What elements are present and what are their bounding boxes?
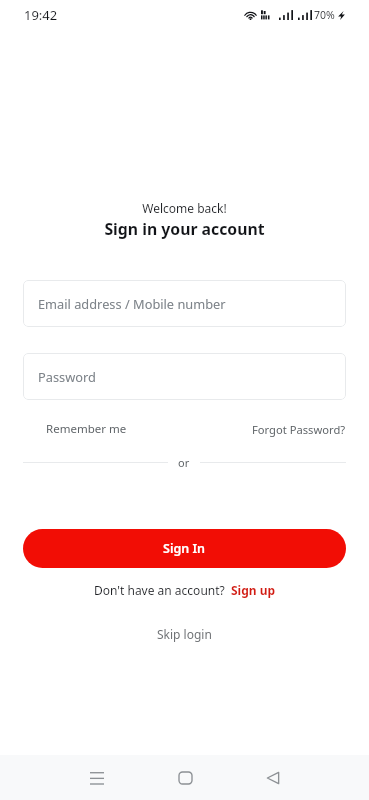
button[interactable]: Sign up [225,582,276,598]
staticText: Sign up [231,582,276,598]
button[interactable]: Sign In [23,529,346,568]
staticText: or [178,455,190,470]
staticText: Welcome back! [0,200,369,216]
staticText: Email address / Mobile number [38,295,226,312]
button[interactable]: Home [141,755,229,800]
button[interactable]: Remember me [23,417,137,441]
staticText: 70% [314,8,335,22]
staticText: 19:42 [24,6,58,24]
staticText: Remember me [46,421,127,437]
staticText: Sign in your account [0,218,369,240]
button[interactable]: Back [229,755,317,800]
button[interactable]: Skip login [143,623,226,645]
button[interactable]: Email address / Mobile number [23,280,346,327]
staticText: Don't have an account? [94,582,225,598]
staticText: Forgot Password? [252,422,346,437]
button[interactable]: Recent apps [52,755,141,800]
button[interactable]: Forgot Password? [252,418,346,441]
staticText: Skip login [157,626,212,642]
staticText: Password [38,368,96,385]
button[interactable]: Password [23,353,346,400]
staticText: Sign In [163,540,206,557]
